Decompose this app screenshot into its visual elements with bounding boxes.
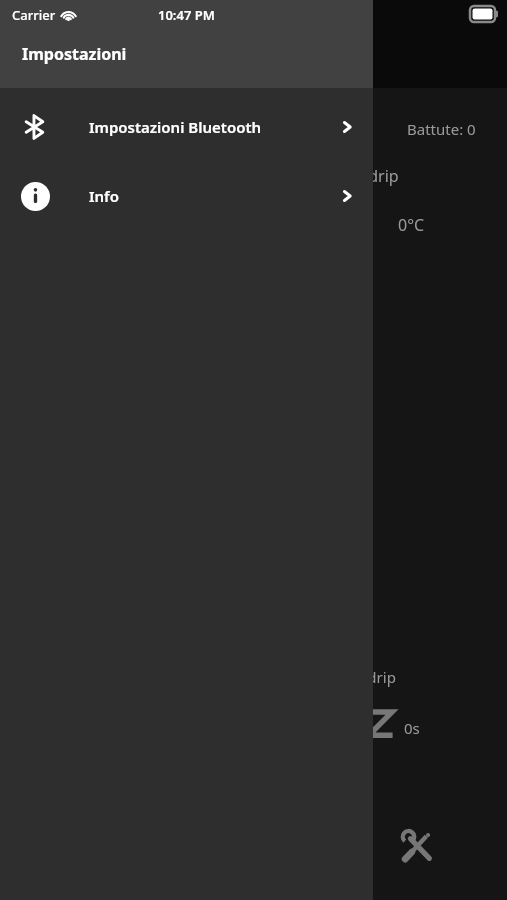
button[interactable]: Strumenti bbox=[398, 827, 438, 867]
staticText: Carrier bbox=[12, 6, 56, 24]
staticText: Impostazioni Bluetooth bbox=[89, 117, 262, 137]
staticText: Info bbox=[89, 186, 119, 206]
staticText: Impostazioni bbox=[22, 43, 127, 65]
button[interactable]: Info bbox=[0, 171, 373, 221]
staticText: 0°C bbox=[398, 214, 425, 236]
staticText: è drip bbox=[355, 667, 396, 687]
staticText: 0s bbox=[404, 718, 420, 738]
staticText: 10:47 PM bbox=[158, 6, 215, 24]
button[interactable]: Impostazioni Bluetooth bbox=[0, 102, 373, 152]
staticText: è drip bbox=[355, 165, 399, 187]
staticText: Battute: 0 bbox=[407, 119, 476, 139]
